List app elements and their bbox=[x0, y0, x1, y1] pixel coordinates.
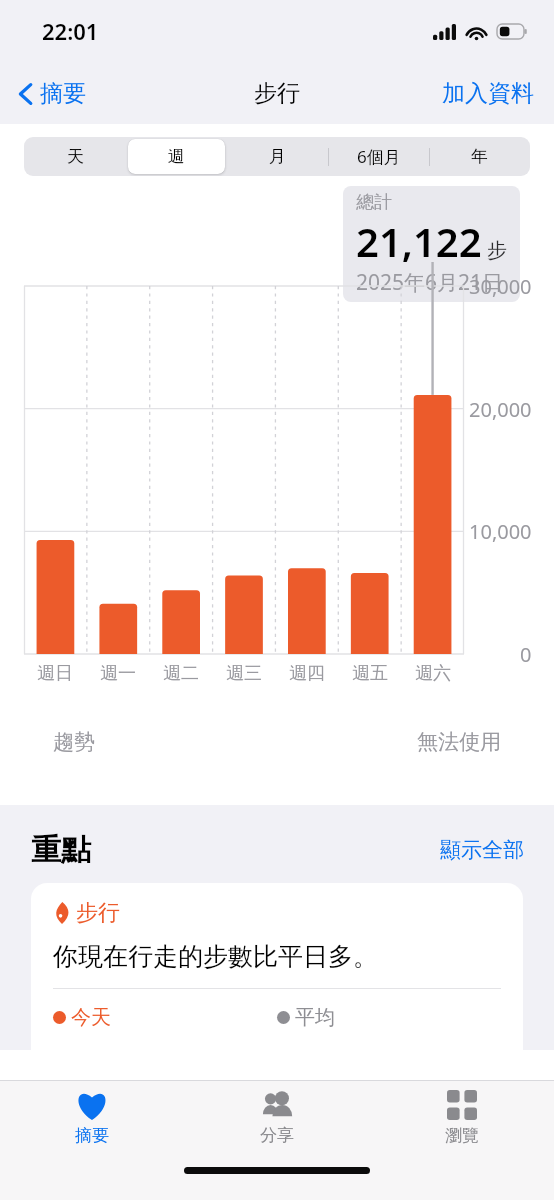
staticText: 週日 bbox=[37, 662, 73, 685]
staticText: 步 bbox=[487, 238, 507, 263]
staticText: 瀏覽 bbox=[445, 1125, 479, 1146]
button[interactable]: 步行 bbox=[31, 883, 523, 1050]
staticText: 0 bbox=[520, 641, 532, 668]
button[interactable]: 摘要 bbox=[0, 1081, 184, 1153]
button[interactable]: 趨勢 bbox=[31, 706, 523, 778]
staticText: 摘要 bbox=[75, 1125, 109, 1146]
button[interactable]: 摘要 bbox=[10, 71, 94, 116]
staticText: 總計 bbox=[356, 191, 392, 214]
staticText: 週五 bbox=[352, 662, 388, 685]
staticText: 21,122 bbox=[356, 214, 482, 268]
staticText: 步行 bbox=[254, 79, 300, 108]
staticText: 2025年6月21日 bbox=[356, 268, 504, 297]
button[interactable]: 週 bbox=[126, 137, 227, 176]
button[interactable]: 分享 bbox=[184, 1081, 369, 1153]
button[interactable]: 加入資料 bbox=[432, 71, 554, 116]
button[interactable]: 瀏覽 bbox=[369, 1081, 554, 1153]
staticText: 步行 bbox=[76, 899, 120, 927]
staticText: 重點 bbox=[31, 831, 91, 869]
staticText: 天 bbox=[67, 146, 84, 167]
staticText: 年 bbox=[471, 146, 488, 167]
staticText: 週三 bbox=[226, 662, 262, 685]
staticText: 摘要 bbox=[40, 79, 86, 108]
staticText: 平均 bbox=[295, 1005, 335, 1030]
staticText: 今天 bbox=[71, 1005, 111, 1030]
staticText: 30,000 bbox=[469, 273, 532, 300]
staticText: 週 bbox=[168, 146, 185, 167]
staticText: 月 bbox=[269, 146, 286, 167]
staticText: 10,000 bbox=[469, 518, 532, 545]
staticText: 分享 bbox=[260, 1125, 294, 1146]
staticText: 週四 bbox=[289, 662, 325, 685]
button[interactable]: 天 bbox=[24, 137, 126, 176]
staticText: 無法使用 bbox=[417, 729, 501, 755]
staticText: 週二 bbox=[163, 662, 199, 685]
button[interactable]: 6個月 bbox=[328, 137, 429, 176]
staticText: 週一 bbox=[100, 662, 136, 685]
staticText: 22:01 bbox=[42, 16, 99, 46]
staticText: 20,000 bbox=[469, 396, 532, 423]
button[interactable]: 月 bbox=[227, 137, 328, 176]
button[interactable]: 顯示全部 bbox=[436, 833, 528, 867]
staticText: 趨勢 bbox=[53, 729, 95, 755]
staticText: 週六 bbox=[415, 662, 451, 685]
button[interactable]: 年 bbox=[429, 137, 530, 176]
staticText: 6個月 bbox=[357, 145, 401, 168]
staticText: 你現在行走的步數比平日多。 bbox=[53, 941, 378, 972]
